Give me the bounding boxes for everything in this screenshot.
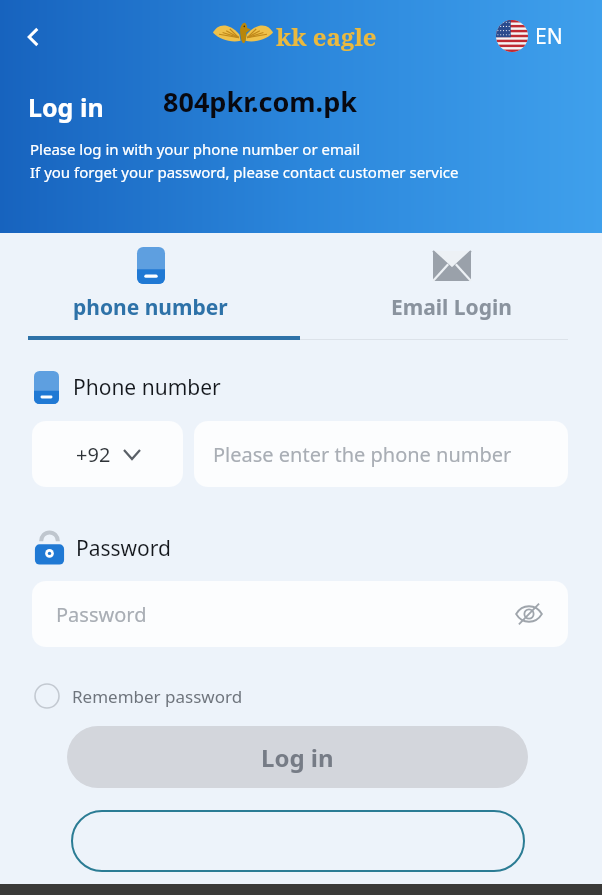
button[interactable] <box>72 811 524 871</box>
staticText: Email Login <box>391 293 512 322</box>
staticText: Password <box>76 534 171 563</box>
button[interactable]: Email Login <box>301 233 602 343</box>
staticText: Please log in with your phone number or … <box>30 139 361 159</box>
button[interactable]: kk eagle <box>213 16 377 56</box>
button[interactable]: Back <box>8 12 58 62</box>
staticText: 804pkr.com.pk <box>163 83 357 120</box>
button[interactable]: Remember password <box>30 679 247 713</box>
staticText: +92 <box>76 441 111 468</box>
staticText: kk eagle <box>276 20 377 53</box>
button[interactable]: Please enter the phone number <box>194 421 568 487</box>
staticText: Please enter the phone number <box>213 441 512 468</box>
staticText: Remember password <box>72 685 243 708</box>
staticText: Phone number <box>73 373 221 402</box>
button[interactable]: EN <box>494 18 565 54</box>
button[interactable]: Show password <box>512 597 546 631</box>
staticText: Password <box>56 601 147 628</box>
button[interactable]: Log in <box>67 726 528 788</box>
button[interactable]: +92 <box>32 421 183 487</box>
staticText: Log in <box>261 741 334 774</box>
staticText: Log in <box>28 90 104 124</box>
staticText: EN <box>535 22 563 51</box>
button[interactable]: Password <box>32 581 568 647</box>
staticText: If you forget your password, please cont… <box>30 162 459 182</box>
button[interactable]: phone number <box>0 233 301 343</box>
staticText: phone number <box>73 293 228 322</box>
